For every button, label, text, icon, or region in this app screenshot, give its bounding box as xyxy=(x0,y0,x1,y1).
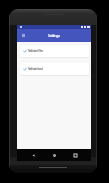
button[interactable]: Notification Offers xyxy=(20,45,89,57)
button[interactable]: Notification Sound xyxy=(20,63,89,75)
staticText: Notification Sound xyxy=(28,67,43,71)
staticText: Notification Offers xyxy=(28,49,43,53)
staticText: Settings xyxy=(48,33,60,38)
button[interactable]: Recents xyxy=(70,150,80,160)
button[interactable]: Back xyxy=(28,150,38,160)
button[interactable]: Home xyxy=(49,150,59,160)
button[interactable]: Open navigation menu xyxy=(18,30,28,40)
